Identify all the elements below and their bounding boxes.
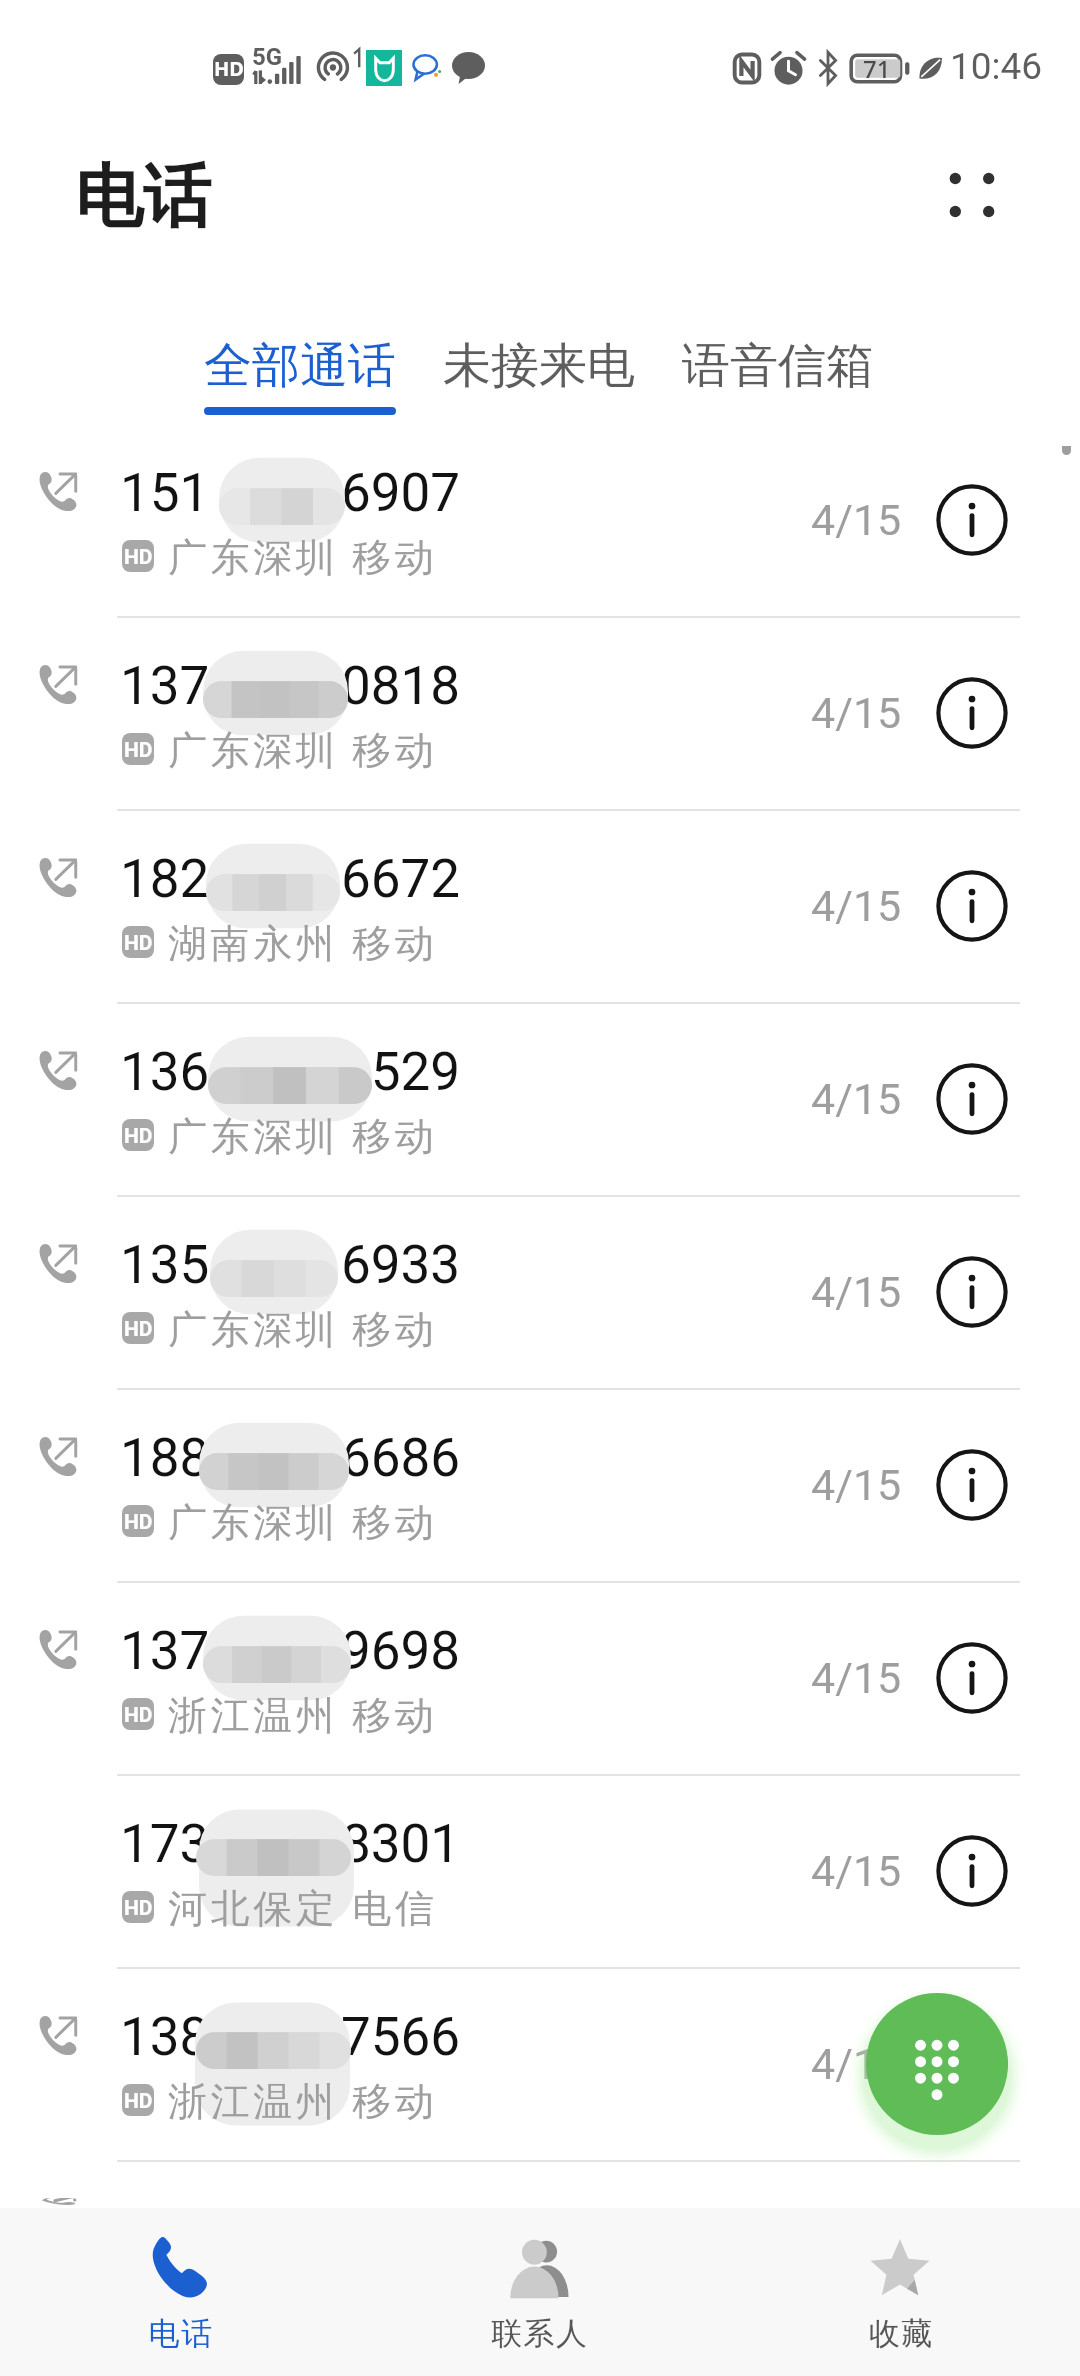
button[interactable]: Call details <box>932 1445 1012 1525</box>
staticText: 8301 <box>341 1813 461 1875</box>
staticText: 湖南永州 移动 <box>168 915 438 968</box>
button[interactable]: 电话 <box>53 135 283 265</box>
staticText: HD <box>124 1317 153 1342</box>
staticText: 135 <box>120 1234 210 1296</box>
staticText: 138 <box>120 2006 210 2068</box>
staticText: 4/15 <box>811 688 902 738</box>
staticText: 4/15 <box>811 495 902 545</box>
button[interactable]: Call details <box>932 673 1012 753</box>
staticText: 4/15 <box>811 1460 902 1510</box>
button[interactable]: Call details <box>932 866 1012 946</box>
button[interactable]: Dialpad <box>866 1993 1008 2135</box>
button[interactable]: More options <box>907 130 1037 260</box>
staticText: 9698 <box>341 1620 461 1682</box>
button[interactable]: Call details <box>932 1252 1012 1332</box>
button[interactable]: 151 <box>0 424 1080 617</box>
staticText: 173 <box>120 1813 210 1875</box>
button[interactable]: Call details <box>932 2024 1012 2104</box>
button[interactable]: Call details <box>932 1638 1012 1718</box>
staticText: 收藏 <box>868 2314 933 2353</box>
button[interactable]: 联系人 <box>360 2208 720 2376</box>
staticText: 3529 <box>341 1041 461 1103</box>
staticText: 136 <box>120 1041 210 1103</box>
staticText: 188 <box>120 1427 210 1489</box>
button[interactable]: 收藏 <box>720 2208 1080 2376</box>
staticText: HD <box>124 1510 153 1535</box>
staticText: 电话 <box>75 155 211 241</box>
button[interactable]: 137 <box>0 1582 1080 1775</box>
staticText: 6672 <box>341 848 461 910</box>
staticText: 浙江温州 移动 <box>168 2073 438 2126</box>
staticText: 6686 <box>341 1427 461 1489</box>
staticText: 0818 <box>341 655 461 717</box>
staticText: 4/15 <box>811 1267 902 1317</box>
staticText: 电话 <box>148 2314 213 2353</box>
staticText: HD <box>124 738 153 763</box>
staticText: HD <box>124 545 153 570</box>
staticText: HD <box>214 55 244 82</box>
staticText: 7566 <box>341 2006 461 2068</box>
button[interactable]: 137 <box>0 617 1080 810</box>
staticText: 71 <box>863 52 891 83</box>
staticText: 4/15 <box>811 2039 902 2089</box>
button[interactable]: Call details <box>932 1059 1012 1139</box>
staticText: HD <box>124 2089 153 2114</box>
staticText: 4/15 <box>811 1074 902 1124</box>
staticText: 182 <box>120 848 210 910</box>
staticText: 137 <box>120 1620 210 1682</box>
staticText: 4/15 <box>811 1846 902 1896</box>
staticText: 4/15 <box>811 881 902 931</box>
staticText: 广东深圳 移动 <box>168 1494 438 1547</box>
staticText: 广东深圳 移动 <box>168 1108 438 1161</box>
staticText: 浙江温州 移动 <box>168 1687 438 1740</box>
staticText: HD <box>124 931 153 956</box>
staticText: 151 <box>120 462 210 524</box>
staticText: 未接来电 <box>443 336 635 396</box>
staticText: 广东深圳 移动 <box>168 529 438 582</box>
staticText: 语音信箱 <box>682 336 874 396</box>
button[interactable]: 138 <box>0 1968 1080 2161</box>
staticText: 广东深圳 移动 <box>168 1301 438 1354</box>
staticText: 10:46 <box>950 45 1043 88</box>
staticText: 6907 <box>341 462 461 524</box>
staticText: 6933 <box>341 1234 461 1296</box>
staticText: 137 <box>120 655 210 717</box>
button[interactable]: 135 <box>0 1196 1080 1389</box>
button[interactable]: Call details <box>932 480 1012 560</box>
staticText: 河北保定 电信 <box>168 1880 438 1933</box>
button[interactable]: 语音信箱 <box>660 326 896 426</box>
staticText: 全部通话 <box>204 336 396 396</box>
staticText: HD <box>124 1124 153 1149</box>
button[interactable]: 173 <box>0 1775 1080 1968</box>
button[interactable]: Call details <box>932 1831 1012 1911</box>
staticText: HD <box>124 1703 153 1728</box>
button[interactable]: 未接来电 <box>421 326 657 426</box>
button[interactable]: 188 <box>0 1389 1080 1582</box>
button[interactable]: 136 <box>0 1003 1080 1196</box>
staticText: 联系人 <box>491 2314 589 2353</box>
staticText: 广东深圳 移动 <box>168 722 438 775</box>
staticText: HD <box>124 1896 153 1921</box>
button[interactable]: 182 <box>0 810 1080 1003</box>
button[interactable]: 电话 <box>0 2208 360 2376</box>
button[interactable]: 全部通话 <box>182 326 418 426</box>
staticText: 4/15 <box>811 1653 902 1703</box>
staticText: 5G <box>252 43 283 71</box>
